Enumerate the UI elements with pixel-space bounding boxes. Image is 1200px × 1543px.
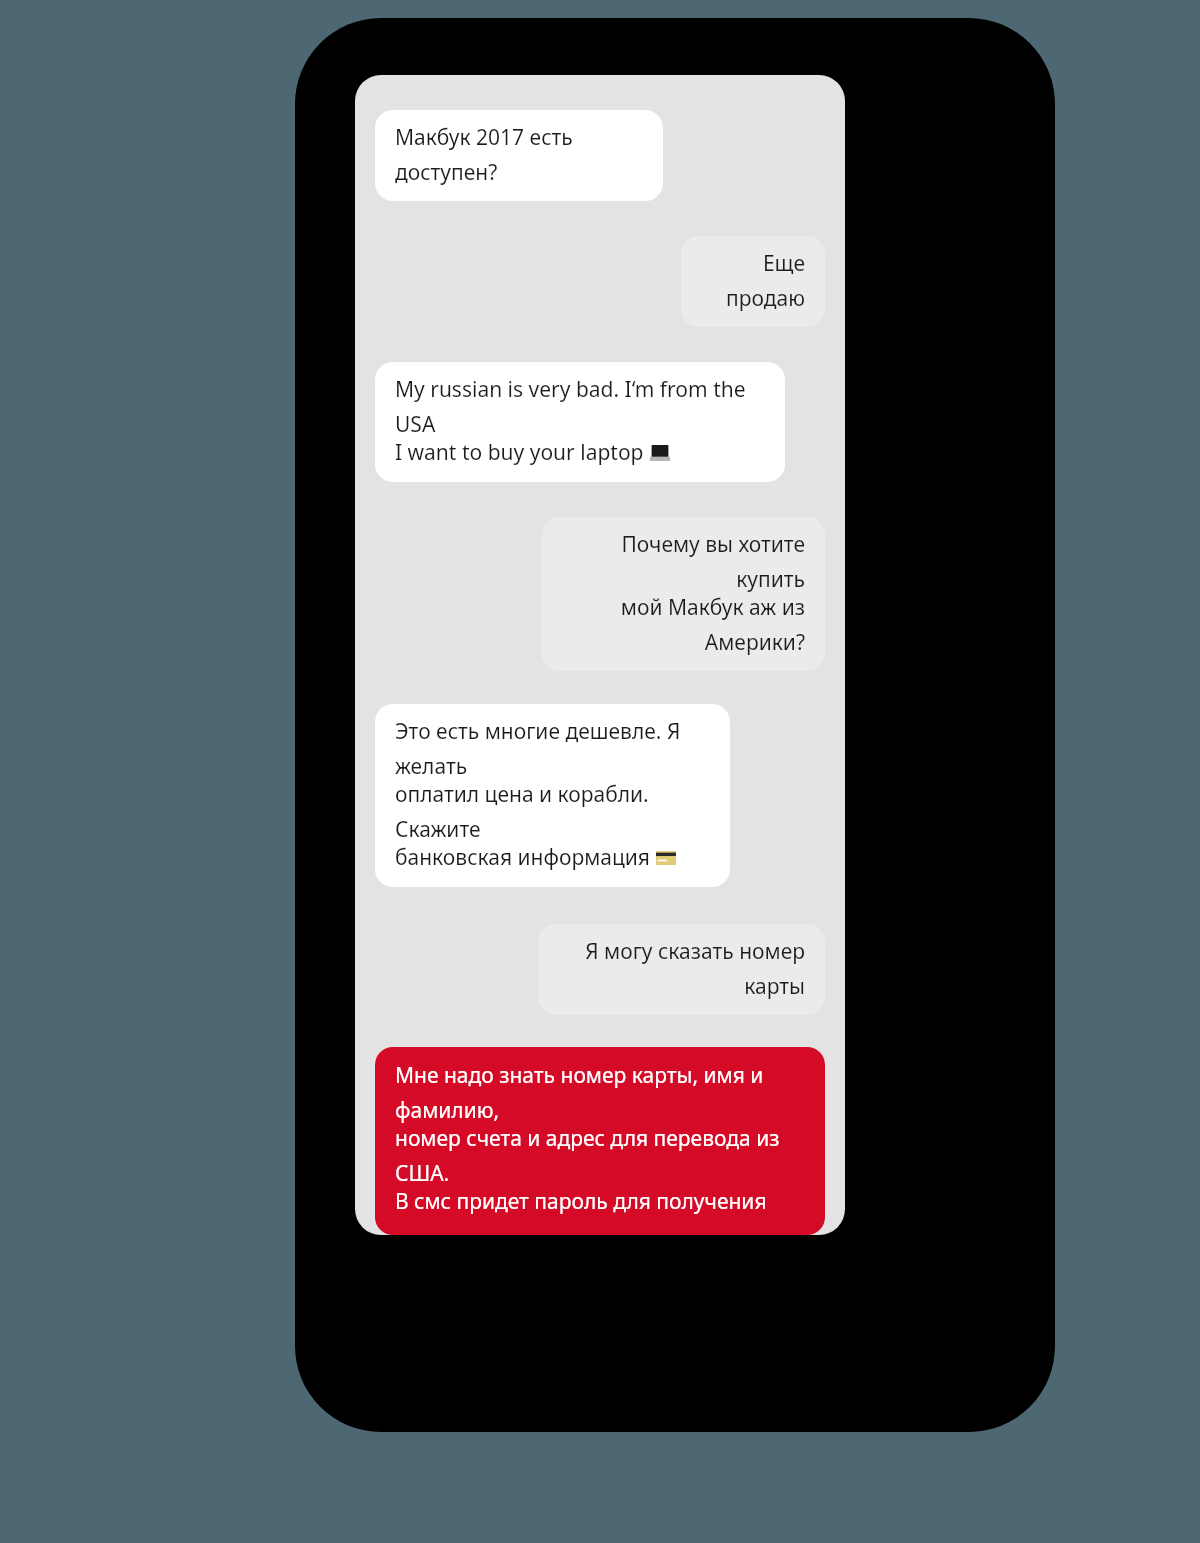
button[interactable]: Еще продаю [681,236,825,327]
staticText: Я могу сказать номер карты [558,937,805,1000]
staticText: Это есть многие дешевле. Я желать [395,717,710,780]
staticText: номер счета и адрес для перевода из США. [395,1124,809,1187]
staticText: Почему вы хотите купить [562,530,805,593]
button[interactable]: Мне надо знать номер карты, имя и фамили… [375,1047,825,1235]
staticText: Макбук 2017 есть доступен? [395,123,643,186]
staticText: I want to buy your laptop [395,438,644,467]
staticText: Еще продаю [701,249,805,312]
staticText: оплатил цена и корабли. Скажите [395,780,710,843]
staticText: мой Макбук аж из Америки? [562,593,805,656]
button[interactable]: Макбук 2017 есть доступен? [375,110,663,201]
staticText: My russian is very bad. I‘m from the USA [395,375,765,438]
button[interactable]: Это есть многие дешевле. Я желать [375,704,730,887]
staticText: В смс придет пароль для получения денег [395,1187,809,1217]
staticText: банковская информация [395,843,650,872]
button[interactable]: My russian is very bad. I‘m from the USA [375,362,785,482]
staticText: Мне надо знать номер карты, имя и фамили… [395,1061,809,1124]
button[interactable]: Почему вы хотите купить [542,517,825,671]
button[interactable]: Я могу сказать номер карты [538,924,825,1015]
